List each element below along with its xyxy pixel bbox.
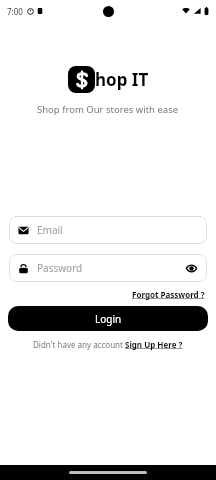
button[interactable]: Email <box>9 216 207 244</box>
button[interactable]: Toggle password visibility <box>184 261 198 275</box>
button[interactable]: Forgot Password ? <box>130 288 207 301</box>
staticText: hop IT <box>95 68 149 91</box>
button[interactable]: Sign Up Here ? <box>125 339 183 350</box>
staticText: Sign Up Here ? <box>125 339 183 350</box>
staticText: Email <box>37 223 198 237</box>
staticText: Password <box>37 261 184 275</box>
button[interactable]: Password <box>9 254 207 282</box>
button[interactable]: Login <box>8 306 208 331</box>
staticText: Login <box>95 312 122 326</box>
staticText: Didn't have any account <box>33 339 125 350</box>
staticText: 7:00 <box>7 6 23 17</box>
staticText: Shop from Our stores with ease <box>37 103 179 116</box>
staticText: Forgot Password ? <box>132 289 205 300</box>
